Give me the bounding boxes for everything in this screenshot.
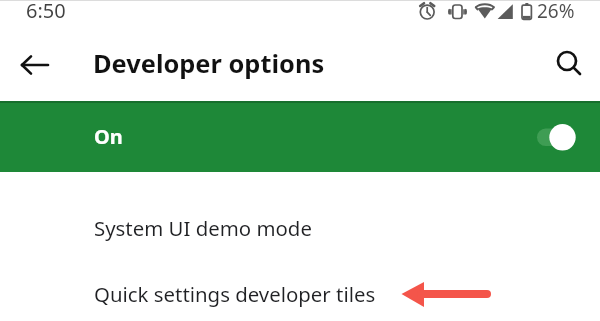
staticText: 26% bbox=[537, 0, 575, 24]
button[interactable]: Back bbox=[12, 45, 54, 87]
button[interactable]: On bbox=[0, 101, 600, 172]
button[interactable]: System UI demo mode bbox=[0, 205, 600, 250]
staticText: 6:50 bbox=[26, 0, 66, 24]
button[interactable]: Search bbox=[549, 45, 589, 85]
staticText: Quick settings developer tiles bbox=[94, 280, 376, 308]
staticText: Developer options bbox=[93, 46, 325, 81]
staticText: On bbox=[94, 123, 123, 150]
staticText: System UI demo mode bbox=[94, 214, 312, 242]
button[interactable]: Quick settings developer tiles bbox=[0, 271, 600, 316]
